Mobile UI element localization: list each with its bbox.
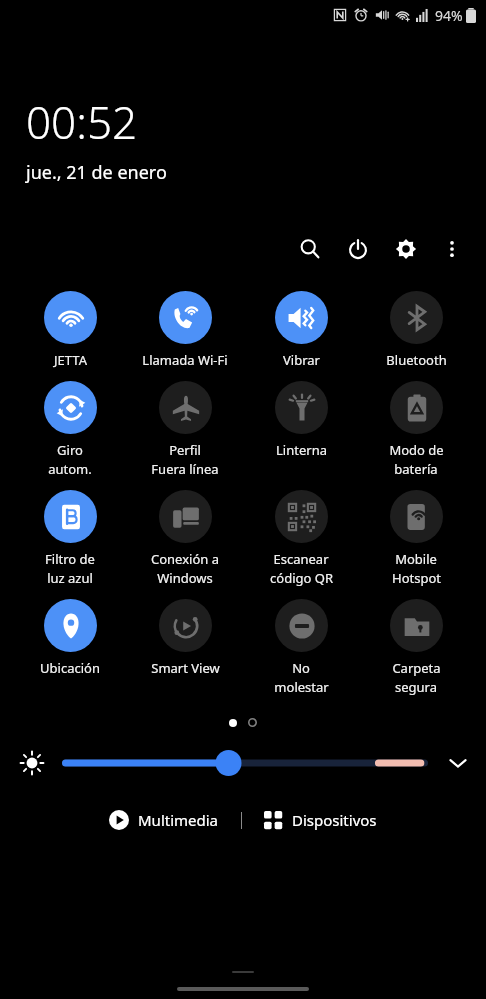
staticText: Linterna — [276, 441, 327, 459]
staticText: No — [292, 659, 310, 677]
staticText: molestar — [274, 678, 329, 696]
staticText: Smart View — [151, 659, 220, 677]
staticText: Dispositivos — [292, 810, 377, 830]
button[interactable]: Smart View — [131, 597, 239, 677]
staticText: jue., 21 de enero — [26, 160, 167, 185]
button[interactable]: Auto brightness — [16, 747, 48, 779]
button[interactable]: Dispositivos — [256, 806, 385, 834]
staticText: Bluetooth — [386, 351, 447, 369]
button[interactable]: Linterna — [247, 379, 355, 459]
button[interactable]: Carpeta — [362, 597, 470, 696]
button[interactable]: Ubicación — [16, 597, 124, 677]
staticText: Windows — [157, 569, 213, 587]
button[interactable]: Llamada Wi-Fi — [131, 289, 239, 369]
staticText: Carpeta — [392, 659, 441, 677]
button[interactable]: Modo de — [362, 379, 470, 478]
staticText: 00:52 — [26, 92, 138, 152]
button[interactable]: Conexión a — [131, 488, 239, 587]
staticText: Escanear — [273, 550, 329, 568]
staticText: batería — [394, 460, 438, 478]
staticText: código QR — [270, 569, 333, 587]
button[interactable]: Expand brightness settings — [442, 747, 474, 779]
button[interactable]: More options — [436, 233, 468, 265]
staticText: Giro — [57, 441, 83, 459]
button[interactable]: Search — [294, 233, 326, 265]
staticText: Multimedia — [138, 810, 219, 830]
staticText: Llamada Wi-Fi — [142, 351, 228, 369]
staticText: Modo de — [389, 441, 444, 459]
button[interactable]: No — [247, 597, 355, 696]
button[interactable]: Multimedia — [101, 806, 227, 834]
button[interactable]: Power — [342, 233, 374, 265]
button[interactable]: Vibrar — [247, 289, 355, 369]
staticText: autom. — [48, 460, 92, 478]
staticText: Conexión a — [151, 550, 219, 568]
button[interactable]: Giro — [16, 379, 124, 478]
staticText: Hotspot — [392, 569, 441, 587]
staticText: 94% — [435, 6, 463, 25]
button[interactable]: Settings — [390, 233, 422, 265]
staticText: JETTA — [54, 351, 87, 369]
staticText: Vibrar — [283, 351, 320, 369]
button[interactable]: Brightness slider — [62, 747, 428, 779]
button[interactable]: Mobile — [362, 488, 470, 587]
staticText: Filtro de — [45, 550, 95, 568]
button[interactable]: Bluetooth — [362, 289, 470, 369]
staticText: Ubicación — [40, 659, 100, 677]
button[interactable]: Escanear — [247, 488, 355, 587]
button[interactable]: Filtro de — [16, 488, 124, 587]
staticText: luz azul — [47, 569, 93, 587]
staticText: Fuera línea — [151, 460, 219, 478]
button[interactable]: Perfil — [131, 379, 239, 478]
button[interactable]: JETTA — [16, 289, 124, 369]
staticText: Mobile — [395, 550, 437, 568]
staticText: segura — [395, 678, 437, 696]
staticText: Perfil — [169, 441, 201, 459]
